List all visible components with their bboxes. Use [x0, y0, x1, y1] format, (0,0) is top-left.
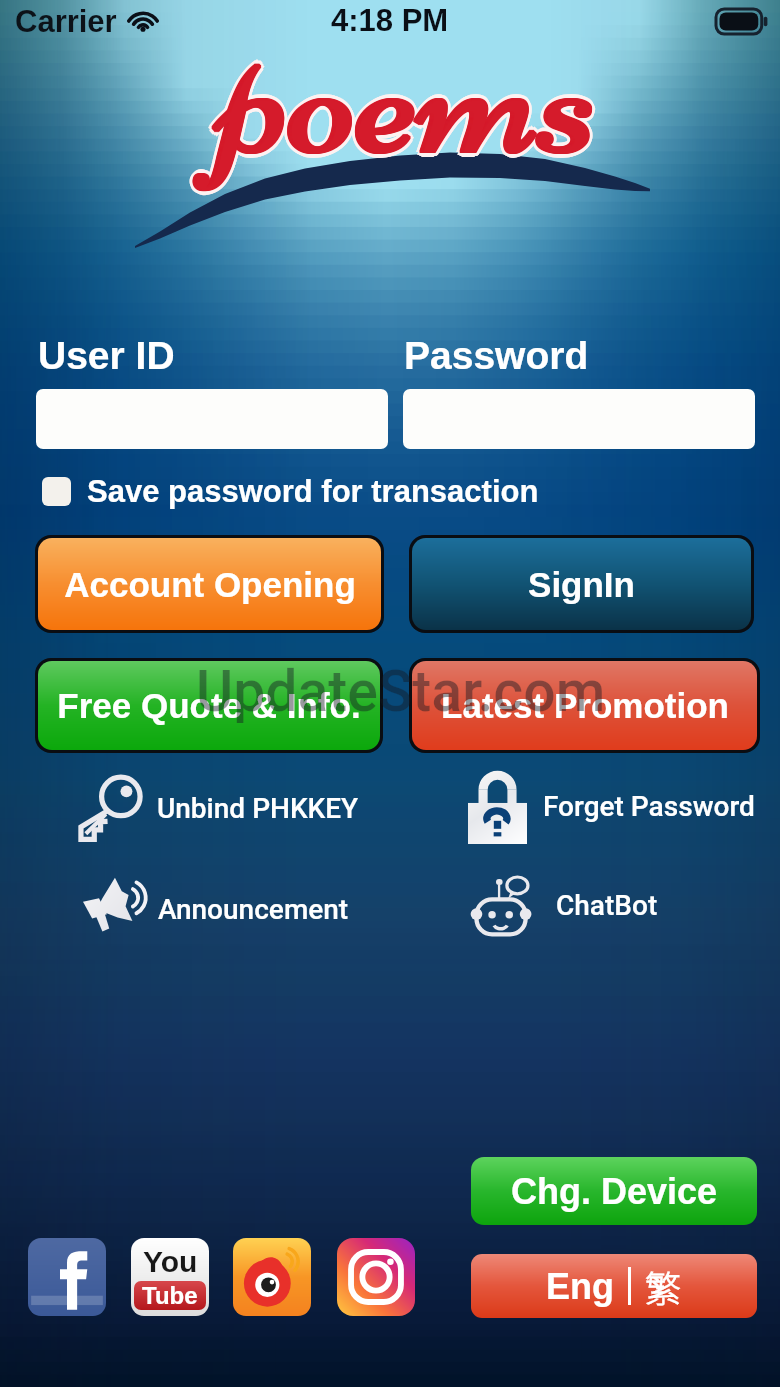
staticText: poems: [214, 0, 594, 206]
staticText: Tube: [142, 1282, 198, 1309]
staticText: poems: [213, 0, 593, 203]
staticText: poems: [218, 0, 598, 202]
staticText: 繁: [645, 1260, 682, 1312]
staticText: Free Quote & Info.: [57, 686, 361, 725]
staticText: poems: [220, 0, 600, 203]
button[interactable]: Account Opening: [38, 538, 381, 630]
button[interactable]: SignIn: [412, 538, 751, 630]
staticText: Account Opening: [64, 565, 356, 604]
button[interactable]: ChatBot: [464, 870, 658, 940]
staticText: poems: [216, 0, 596, 204]
staticText: Carrier: [15, 4, 117, 39]
button[interactable]: Eng: [471, 1254, 757, 1318]
staticText: poems: [216, 0, 596, 207]
staticText: poems: [216, 0, 596, 203]
staticText: SignIn: [528, 565, 635, 604]
staticText: Chg. Device: [511, 1171, 718, 1211]
staticText: poems: [218, 0, 598, 204]
staticText: poems: [222, 0, 602, 206]
staticText: Save password for transaction: [87, 474, 539, 509]
button[interactable]: [36, 389, 388, 449]
staticText: Forget Password: [543, 790, 755, 823]
button[interactable]: YouTube: [131, 1238, 209, 1316]
staticText: poems: [216, 0, 596, 202]
button[interactable]: Announcement: [72, 874, 349, 944]
button[interactable]: Facebook: [28, 1238, 106, 1316]
staticText: Announcement: [158, 893, 349, 926]
staticText: poems: [221, 0, 601, 199]
staticText: poems: [218, 0, 598, 203]
other: Announcement: [72, 874, 148, 944]
staticText: poems: [220, 0, 600, 202]
staticText: poems: [220, 0, 600, 204]
staticText: poems: [216, 0, 596, 199]
other: ChatBot: [464, 870, 542, 940]
button[interactable]: Weibo: [233, 1238, 311, 1316]
staticText: User ID: [38, 334, 175, 378]
staticText: Unbind PHKKEY: [157, 792, 359, 825]
button[interactable]: Free Quote & Info.: [38, 661, 380, 750]
button[interactable]: Forget Password: [468, 768, 755, 844]
staticText: Eng: [546, 1266, 614, 1306]
button[interactable]: Latest Promotion: [412, 661, 757, 750]
staticText: poems: [218, 0, 598, 208]
button[interactable]: Instagram: [337, 1238, 415, 1316]
staticText: poems: [221, 0, 601, 207]
other: Forget Password: [468, 768, 527, 844]
staticText: poems: [222, 0, 602, 201]
other: Unbind PHKKEY: [75, 774, 145, 842]
staticText: Password: [404, 334, 589, 378]
staticText: poems: [217, 0, 597, 202]
staticText: poems: [223, 0, 603, 203]
staticText: You: [143, 1245, 198, 1279]
button[interactable]: Unbind PHKKEY: [75, 774, 359, 842]
staticText: ChatBot: [556, 889, 658, 922]
staticText: poems: [219, 0, 599, 204]
staticText: Latest Promotion: [441, 686, 729, 725]
button[interactable]: Save password for transaction: [42, 474, 539, 509]
staticText: poems: [218, 0, 598, 198]
button[interactable]: Chg. Device: [471, 1157, 757, 1225]
staticText: UpdateStar.com: [196, 658, 606, 725]
staticText: poems: [219, 0, 599, 202]
staticText: 4:18 PM: [331, 3, 449, 38]
staticText: poems: [217, 0, 597, 204]
staticText: poems: [219, 0, 599, 203]
staticText: poems: [217, 0, 597, 203]
button[interactable]: [403, 389, 755, 449]
staticText: poems: [214, 0, 594, 201]
